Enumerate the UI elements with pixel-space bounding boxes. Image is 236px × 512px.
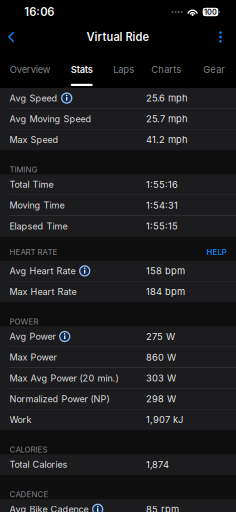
staticText: 158 bpm	[146, 265, 185, 277]
staticText: Avg Speed	[9, 93, 57, 104]
button[interactable]: Max Avg Power (20 min.)	[0, 368, 236, 389]
staticText: Max Speed	[9, 134, 58, 145]
staticText: 860 W	[146, 352, 176, 363]
button[interactable]: Avg Moving Speed	[0, 109, 236, 130]
staticText: Gear	[203, 64, 225, 75]
staticText: Total Calories	[9, 459, 67, 470]
staticText: 1:55:15	[146, 220, 178, 232]
staticText: Overview	[10, 64, 51, 75]
staticText: Max Heart Rate	[9, 286, 76, 297]
staticText: Avg Moving Speed	[9, 113, 91, 124]
button[interactable]: Max Heart Rate	[0, 282, 236, 302]
staticText: 100	[204, 8, 217, 16]
button[interactable]: Stats	[71, 50, 93, 88]
staticText: POWER	[9, 317, 38, 326]
staticText: 25.6 mph	[146, 92, 188, 104]
staticText: Avg Bike Cadence	[9, 504, 88, 512]
staticText: Avg Power	[9, 331, 55, 342]
staticText: 1,874	[146, 459, 169, 470]
staticText: Elapsed Time	[9, 221, 67, 232]
button[interactable]: Max Speed	[0, 130, 236, 150]
staticText: Work	[9, 414, 31, 425]
staticText: 1:55:16	[146, 179, 178, 190]
staticText: 16:06	[24, 5, 54, 19]
staticText: 1:54:31	[146, 200, 178, 211]
button[interactable]: More options	[210, 24, 231, 50]
staticText: Moving Time	[9, 200, 64, 211]
staticText: Normalized Power (NP)	[9, 393, 109, 404]
staticText: 25.7 mph	[146, 113, 188, 125]
button[interactable]: Work	[0, 410, 236, 430]
button[interactable]: Back	[4, 24, 18, 50]
staticText: 85 rpm	[146, 504, 179, 512]
button[interactable]: Laps	[113, 50, 134, 88]
staticText: Max Power	[9, 352, 56, 363]
button[interactable]: HELP	[202, 243, 230, 261]
button[interactable]: Avg Heart Rate	[0, 261, 236, 282]
staticText: Avg Heart Rate	[9, 265, 75, 276]
staticText: Laps	[113, 64, 134, 75]
staticText: Charts	[151, 64, 181, 75]
staticText: TIMING	[9, 165, 37, 174]
staticText: Total Time	[9, 179, 53, 190]
button[interactable]: Total Calories	[0, 454, 236, 475]
staticText: HELP	[206, 247, 226, 257]
staticText: 275 W	[146, 331, 175, 342]
staticText: 303 W	[146, 372, 176, 384]
button[interactable]: Max Power	[0, 347, 236, 368]
staticText: 298 W	[146, 393, 176, 405]
staticText: Max Avg Power (20 min.)	[9, 373, 118, 384]
button[interactable]: Charts	[151, 50, 181, 88]
button[interactable]: Normalized Power (NP)	[0, 389, 236, 410]
button[interactable]: Moving Time	[0, 195, 236, 216]
button[interactable]: Elapsed Time	[0, 216, 236, 237]
staticText: 1,907 kJ	[146, 414, 183, 425]
staticText: 184 bpm	[146, 286, 185, 297]
button[interactable]: Avg Power	[0, 326, 236, 347]
staticText: 41.2 mph	[146, 134, 188, 145]
button[interactable]: Overview	[10, 50, 51, 88]
button[interactable]: Avg Bike Cadence	[0, 499, 236, 512]
staticText: Virtual Ride	[86, 30, 149, 44]
staticText: HEART RATE	[9, 247, 57, 257]
staticText: Stats	[71, 64, 93, 75]
staticText: CADENCE	[9, 490, 48, 499]
button[interactable]: Total Time	[0, 174, 236, 195]
staticText: CALORIES	[9, 445, 47, 454]
button[interactable]: Avg Speed	[0, 88, 236, 109]
button[interactable]: Gear	[203, 50, 225, 88]
